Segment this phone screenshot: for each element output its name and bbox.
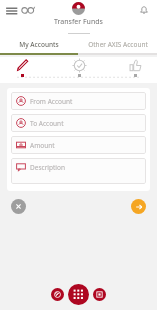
button[interactable]: Step	[10, 57, 34, 77]
staticText: Amount	[30, 141, 55, 150]
button[interactable]: Menu grid	[68, 284, 89, 305]
button[interactable]: To Account	[11, 114, 146, 132]
button[interactable]: Notifications	[138, 4, 150, 16]
button[interactable]: Quick view	[21, 4, 35, 18]
staticText: Transfer Funds	[54, 17, 103, 27]
staticText: My Accounts	[19, 40, 59, 49]
button[interactable]: Next	[131, 199, 146, 214]
button[interactable]: Other AXIS Account	[78, 36, 157, 53]
button[interactable]: Cancel	[11, 199, 26, 214]
staticText: Other AXIS Account	[88, 40, 148, 49]
button[interactable]: Step	[67, 57, 91, 77]
button[interactable]: Offers	[51, 288, 64, 301]
button[interactable]: Menu	[5, 4, 19, 18]
staticText: From Account	[30, 97, 73, 106]
button[interactable]: Scan	[93, 288, 106, 301]
button[interactable]: From Account	[11, 92, 146, 110]
button[interactable]: Step	[123, 57, 147, 77]
button[interactable]: Description	[11, 158, 146, 184]
staticText: Description	[30, 163, 65, 172]
button[interactable]: My Accounts	[0, 36, 78, 53]
staticText: To Account	[30, 119, 64, 128]
button[interactable]: Amount	[11, 136, 146, 154]
